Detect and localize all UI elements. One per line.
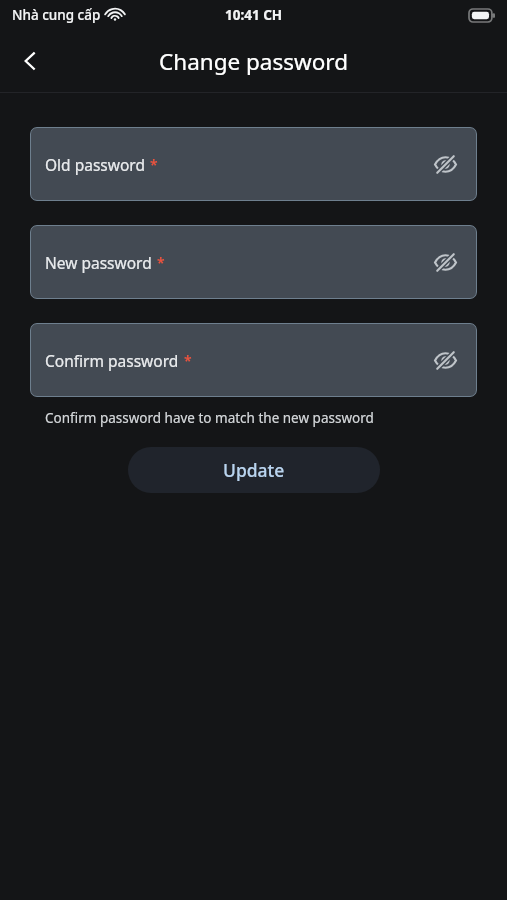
button[interactable]: New password xyxy=(30,225,477,299)
button[interactable]: Toggle password visibility xyxy=(423,142,467,186)
button[interactable]: Old password xyxy=(30,127,477,201)
button[interactable]: Toggle password visibility xyxy=(423,240,467,284)
staticText: * xyxy=(184,351,192,370)
staticText: Nhà cung cấp xyxy=(12,6,101,24)
staticText: Update xyxy=(223,458,285,482)
staticText: New password xyxy=(45,252,152,273)
staticText: * xyxy=(150,155,158,174)
staticText: Change password xyxy=(159,46,349,77)
button[interactable]: Toggle password visibility xyxy=(423,338,467,382)
staticText: Confirm password xyxy=(45,350,179,371)
staticText: Confirm password have to match the new p… xyxy=(45,409,374,427)
button[interactable]: Update xyxy=(128,447,380,493)
staticText: Old password xyxy=(45,154,145,175)
staticText: * xyxy=(157,253,165,272)
staticText: 10:41 CH xyxy=(225,6,283,24)
button[interactable]: Back xyxy=(4,35,56,87)
button[interactable]: Confirm password xyxy=(30,323,477,397)
